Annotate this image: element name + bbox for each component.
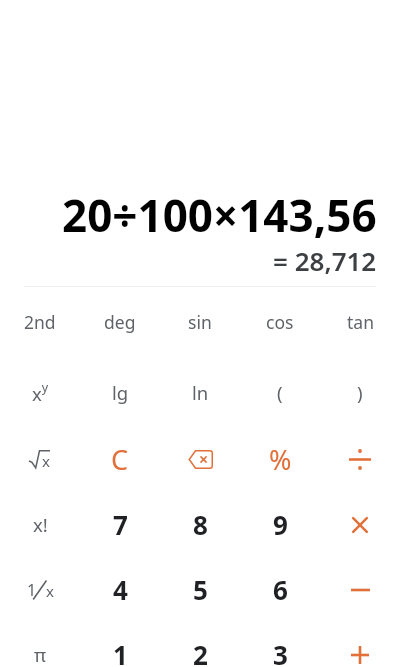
staticText: deg xyxy=(104,310,136,334)
staticText: sin xyxy=(188,310,212,334)
button[interactable]: 6 xyxy=(240,557,320,622)
button[interactable]: ) xyxy=(320,357,400,427)
button[interactable]: 8 xyxy=(160,492,240,557)
button[interactable]: sin xyxy=(160,287,240,357)
staticText: ( xyxy=(277,380,283,405)
staticText: tan xyxy=(347,310,374,334)
button[interactable]: xy xyxy=(0,357,80,427)
button[interactable]: π xyxy=(0,622,80,667)
button[interactable]: deg xyxy=(80,287,160,357)
staticText: x xyxy=(42,451,50,469)
staticText: x! xyxy=(33,512,48,537)
button[interactable]: x! xyxy=(0,492,80,557)
button[interactable]: C xyxy=(80,427,160,492)
staticText: 7 xyxy=(113,507,128,542)
button[interactable]: ( xyxy=(240,357,320,427)
staticText: ) xyxy=(357,380,363,405)
button[interactable]: Square root xyxy=(0,427,80,492)
button[interactable]: Divide xyxy=(320,427,400,492)
button[interactable]: 2nd xyxy=(0,287,80,357)
button[interactable]: cos xyxy=(240,287,320,357)
staticText: 4 xyxy=(113,572,128,607)
button[interactable]: 1 xyxy=(80,622,160,667)
button[interactable]: % xyxy=(240,427,320,492)
button[interactable]: 9 xyxy=(240,492,320,557)
staticText: lg xyxy=(112,380,129,405)
button[interactable]: 2 xyxy=(160,622,240,667)
staticText: 2 xyxy=(193,637,208,667)
staticText: 8 xyxy=(193,507,208,542)
button[interactable]: Minus xyxy=(320,557,400,622)
staticText: cos xyxy=(266,310,294,334)
staticText: 1 xyxy=(113,637,128,667)
button[interactable]: tan xyxy=(320,287,400,357)
staticText: x xyxy=(46,581,54,601)
staticText: 5 xyxy=(193,572,208,607)
staticText: 1 xyxy=(27,579,37,601)
staticText: xy xyxy=(32,379,49,406)
button[interactable]: 5 xyxy=(160,557,240,622)
staticText: = 28,712 xyxy=(273,243,377,278)
staticText: 9 xyxy=(273,507,288,542)
button[interactable]: Plus xyxy=(320,622,400,667)
button[interactable]: Reciprocal xyxy=(0,557,80,622)
button[interactable]: 7 xyxy=(80,492,160,557)
staticText: ln xyxy=(192,380,209,405)
button[interactable]: Multiply xyxy=(320,492,400,557)
button[interactable]: 4 xyxy=(80,557,160,622)
staticText: 6 xyxy=(273,572,288,607)
staticText: 20÷100×143,56 xyxy=(62,185,377,245)
button[interactable]: Backspace xyxy=(160,427,240,492)
staticText: 2nd xyxy=(24,310,56,334)
staticText: % xyxy=(269,441,292,478)
button[interactable]: lg xyxy=(80,357,160,427)
staticText: C xyxy=(111,441,129,478)
staticText: π xyxy=(34,642,47,667)
staticText: 3 xyxy=(273,637,288,667)
button[interactable]: 3 xyxy=(240,622,320,667)
button[interactable]: ln xyxy=(160,357,240,427)
